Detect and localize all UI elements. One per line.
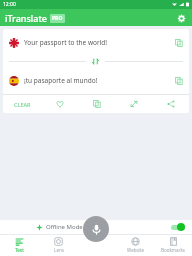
button[interactable]: Favorite [41,95,78,113]
button[interactable]: ¡tu pasaporte al mundo! [3,67,189,94]
staticText: Your passport to the world! [24,38,175,47]
button[interactable]: Your passport to the world! [3,29,189,56]
staticText: PRO [52,15,63,22]
button[interactable]: Offline Mode [0,220,192,234]
button[interactable]: Website [116,234,154,256]
button[interactable]: Swap languages [91,57,100,66]
button[interactable]: CLEAR [3,95,41,113]
button[interactable]: Lens [39,234,78,256]
button[interactable]: Text [0,234,39,256]
button[interactable]: Copy all [78,95,115,113]
staticText: Bookmarks [161,247,185,253]
button[interactable]: Share [152,95,189,113]
button[interactable]: Offline Mode toggle [171,223,185,231]
staticText: 12:00 [3,1,16,8]
staticText: CLEAR [14,101,31,108]
staticText: iTranslate [5,12,48,24]
staticText: Lens [54,247,64,253]
staticText: ¡tu pasaporte al mundo! [24,76,175,85]
button[interactable]: Fullscreen [115,95,152,113]
staticText: Offline Mode [46,223,83,231]
staticText: Text [15,247,24,253]
button[interactable]: Bookmarks [154,234,192,256]
button[interactable]: Voice input [83,216,109,242]
button[interactable]: Settings [174,11,188,25]
staticText: Website [127,247,144,253]
